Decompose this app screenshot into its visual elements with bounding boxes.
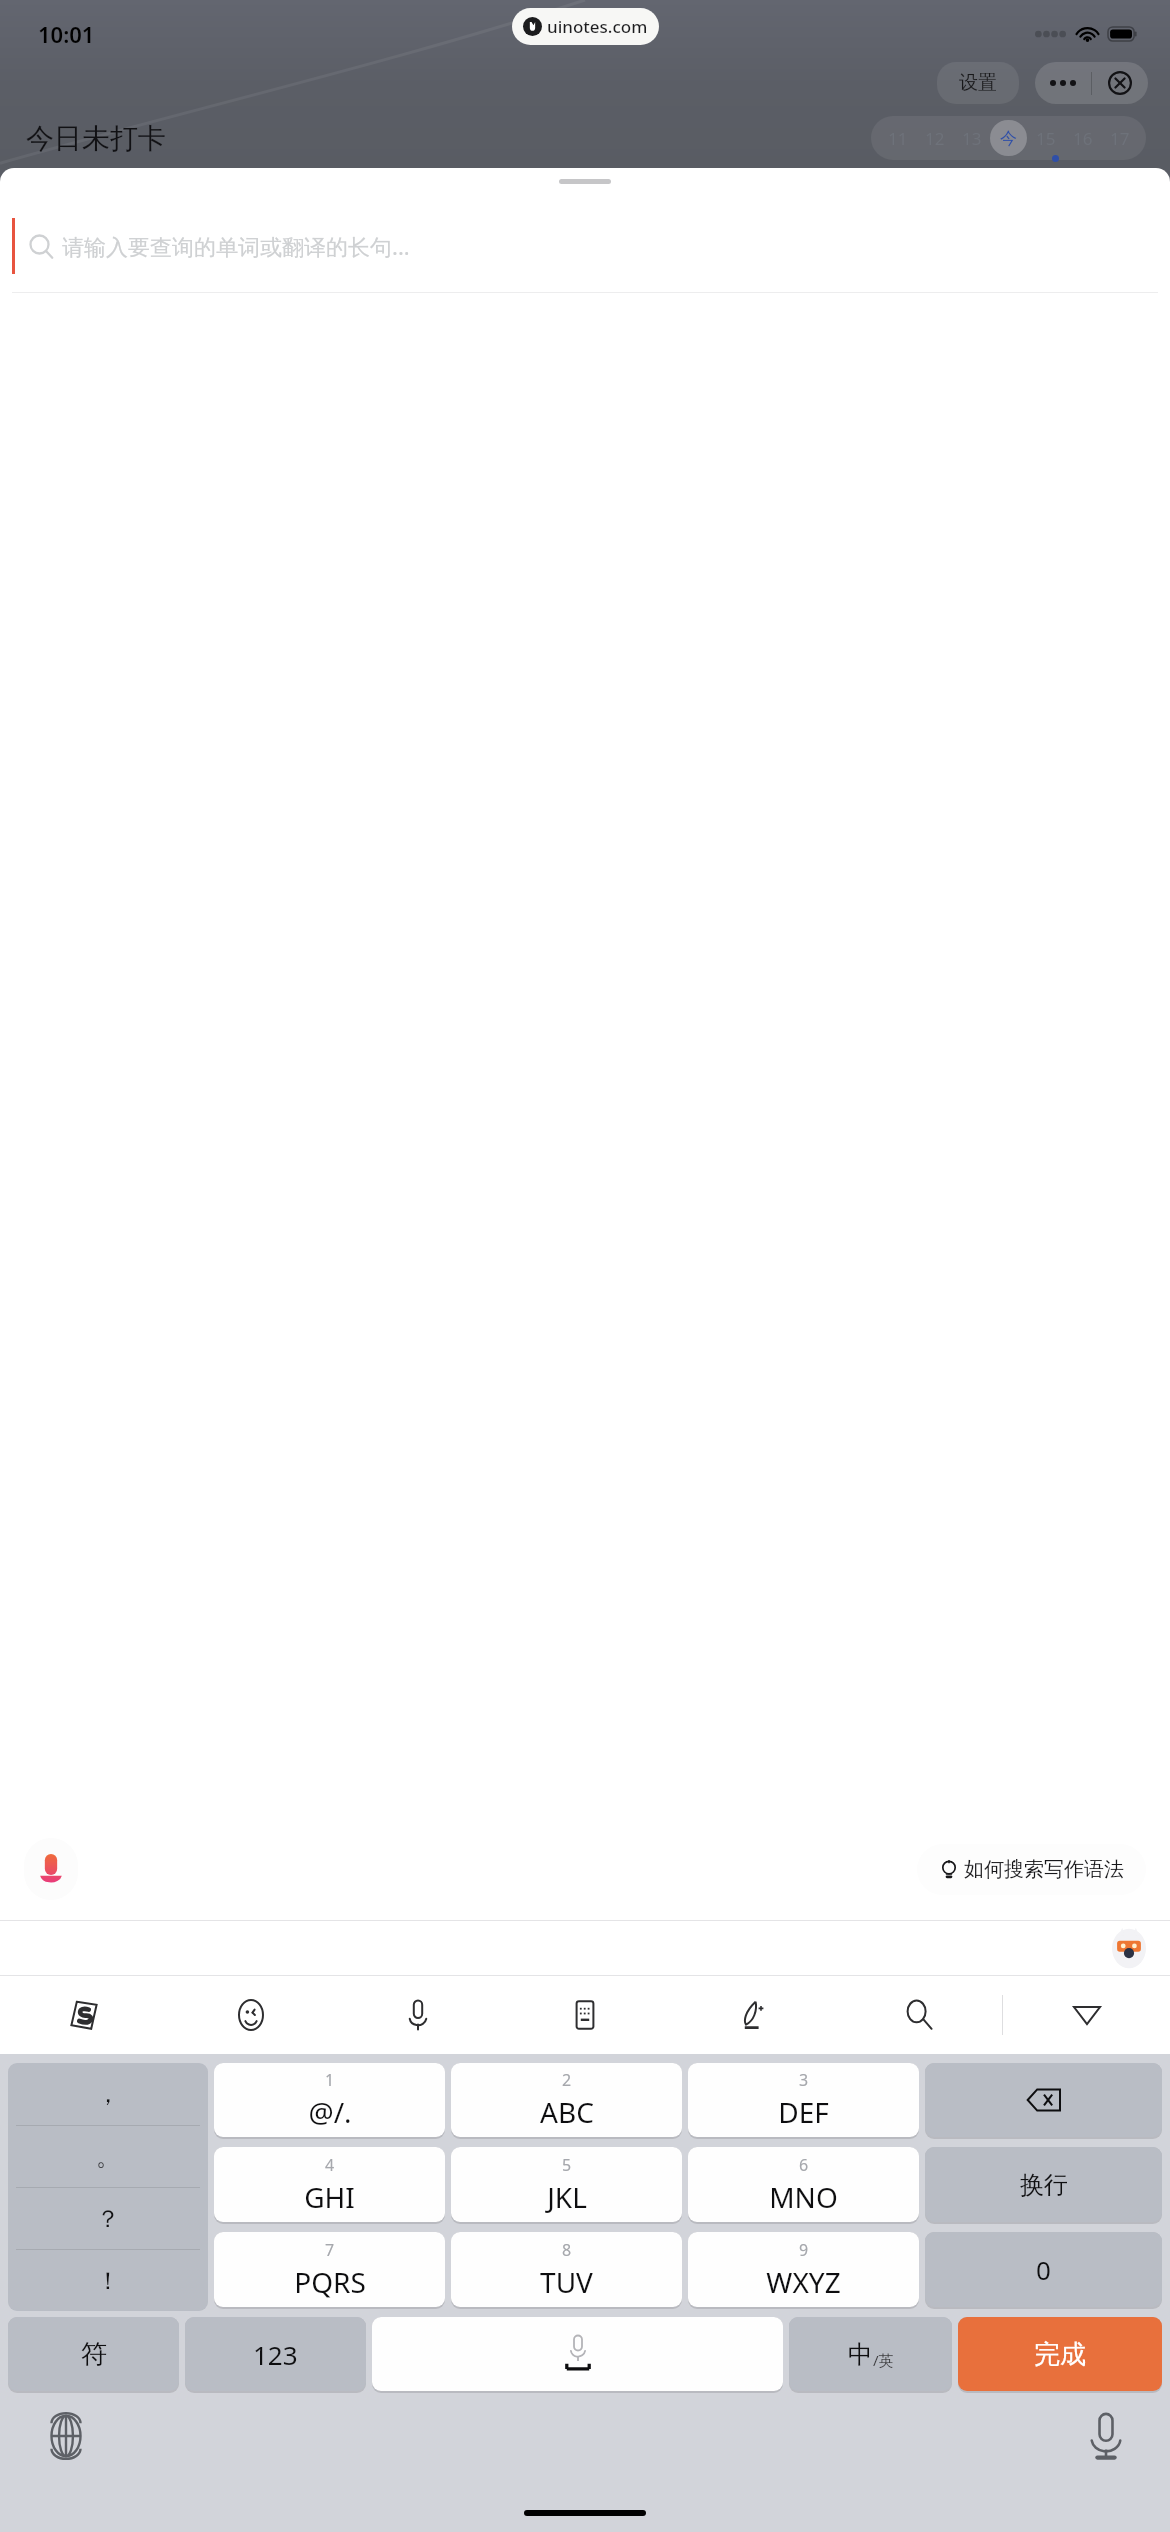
staticText: 12 — [925, 127, 945, 150]
button[interactable]: ， — [8, 2063, 208, 2125]
button[interactable]: 6 — [688, 2147, 919, 2222]
staticText: uinotes.com — [547, 15, 648, 38]
staticText: TUV — [540, 2263, 593, 2301]
staticText: 符 — [81, 2338, 107, 2371]
button[interactable]: Voice input — [24, 1838, 78, 1900]
staticText: 。 — [96, 2142, 120, 2172]
staticText: DEF — [778, 2093, 829, 2131]
button[interactable]: Backspace — [925, 2063, 1162, 2137]
staticText: 8 — [562, 2239, 572, 2261]
staticText: 16 — [1073, 127, 1093, 150]
staticText: 1 — [325, 2069, 335, 2091]
staticText: ？ — [96, 2204, 120, 2234]
staticText: 0 — [1036, 2252, 1051, 2287]
staticText: PQRS — [294, 2263, 366, 2301]
staticText: 9 — [799, 2239, 809, 2261]
button[interactable]: Hide keyboard — [1003, 1976, 1170, 2054]
staticText: 10:01 — [38, 19, 95, 49]
button[interactable]: 1 — [214, 2063, 445, 2137]
button[interactable]: Sticker — [1112, 1927, 1146, 1969]
staticText: 3 — [799, 2069, 809, 2091]
staticText: WXYZ — [766, 2263, 841, 2301]
button[interactable]: Dictation — [1088, 2412, 1124, 2460]
staticText: 4 — [325, 2154, 335, 2176]
staticText: 设置 — [959, 71, 997, 95]
button[interactable]: 2 — [451, 2063, 682, 2137]
staticText: 7 — [325, 2239, 335, 2261]
button[interactable]: 如何搜索写作语法 — [917, 1844, 1146, 1895]
button[interactable]: 今 — [990, 120, 1027, 156]
button[interactable]: Space — [372, 2317, 783, 2391]
button[interactable]: 换行 — [925, 2147, 1162, 2222]
button[interactable]: Close — [1092, 62, 1148, 104]
button[interactable]: Keyboard layout — [501, 1976, 668, 2054]
button[interactable]: Emoji — [167, 1976, 334, 2054]
staticText: 5 — [562, 2154, 572, 2176]
staticText: ！ — [96, 2266, 120, 2296]
button[interactable]: 3 — [688, 2063, 919, 2137]
staticText: ABC — [540, 2093, 594, 2131]
staticText: /英 — [873, 2350, 894, 2370]
button[interactable]: Handwriting — [668, 1976, 835, 2054]
staticText: 如何搜索写作语法 — [964, 1857, 1124, 1882]
staticText: 123 — [253, 2337, 298, 2372]
button[interactable]: 15 — [1027, 120, 1064, 156]
button[interactable]: 符 — [8, 2317, 179, 2391]
button[interactable]: More options — [1035, 62, 1091, 104]
button[interactable]: 。 — [8, 2126, 208, 2187]
staticText: MNO — [769, 2178, 838, 2216]
staticText: 今 — [1000, 128, 1017, 149]
staticText: 今日未打卡 — [26, 121, 166, 156]
button[interactable]: Switch language — [44, 2414, 88, 2458]
button[interactable]: 9 — [688, 2232, 919, 2307]
staticText: 2 — [562, 2069, 572, 2091]
staticText: 换行 — [1020, 2170, 1068, 2200]
staticText: @/. — [308, 2093, 352, 2131]
button[interactable]: 完成 — [958, 2317, 1162, 2391]
button[interactable]: ！ — [8, 2250, 208, 2311]
button[interactable]: 7 — [214, 2232, 445, 2307]
staticText: 完成 — [1034, 2338, 1086, 2371]
staticText: GHI — [304, 2178, 355, 2216]
button[interactable]: 5 — [451, 2147, 682, 2222]
staticText: 请输入要查询的单词或翻译的长句... — [62, 231, 410, 261]
button[interactable]: 123 — [185, 2317, 366, 2391]
button[interactable]: 8 — [451, 2232, 682, 2307]
staticText: ， — [96, 2079, 120, 2109]
button[interactable]: ？ — [8, 2188, 208, 2249]
button[interactable]: Sogou — [0, 1976, 167, 2054]
button[interactable]: Search — [835, 1976, 1002, 2054]
button[interactable]: 中 — [789, 2317, 952, 2391]
staticText: 中 — [848, 2339, 873, 2370]
button[interactable]: 设置 — [937, 62, 1019, 104]
staticText: JKL — [547, 2178, 587, 2216]
button[interactable]: 4 — [214, 2147, 445, 2222]
button[interactable]: Voice — [334, 1976, 501, 2054]
button[interactable]: 0 — [925, 2232, 1162, 2307]
staticText: 6 — [799, 2154, 809, 2176]
